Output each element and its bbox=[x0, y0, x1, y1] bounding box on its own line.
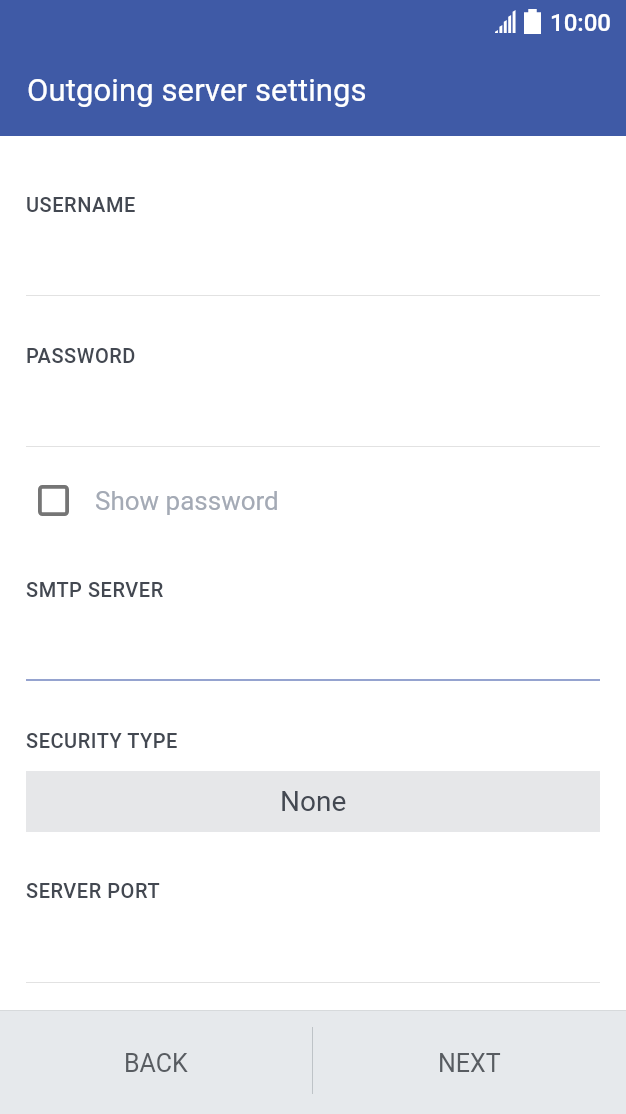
staticText: Show password bbox=[95, 486, 279, 516]
staticText: SECURITY TYPE bbox=[26, 729, 178, 752]
staticText: BACK bbox=[124, 1049, 188, 1078]
staticText: NEXT bbox=[438, 1049, 501, 1078]
staticText: SERVER PORT bbox=[26, 879, 161, 902]
button[interactable]: NEXT bbox=[313, 1010, 626, 1114]
staticText: USERNAME bbox=[26, 193, 136, 216]
staticText: Outgoing server settings bbox=[27, 72, 367, 108]
button[interactable]: Show password bbox=[26, 470, 295, 530]
staticText: PASSWORD bbox=[26, 344, 136, 367]
button[interactable]: SMTP server field bbox=[26, 620, 600, 680]
staticText: SMTP SERVER bbox=[26, 578, 164, 601]
other: Battery bbox=[524, 9, 541, 34]
button[interactable]: BACK bbox=[0, 1010, 312, 1114]
staticText: None bbox=[280, 785, 347, 818]
button[interactable]: None bbox=[26, 771, 600, 832]
other: Signal strength bbox=[495, 10, 517, 33]
staticText: 10:00 bbox=[550, 9, 611, 37]
